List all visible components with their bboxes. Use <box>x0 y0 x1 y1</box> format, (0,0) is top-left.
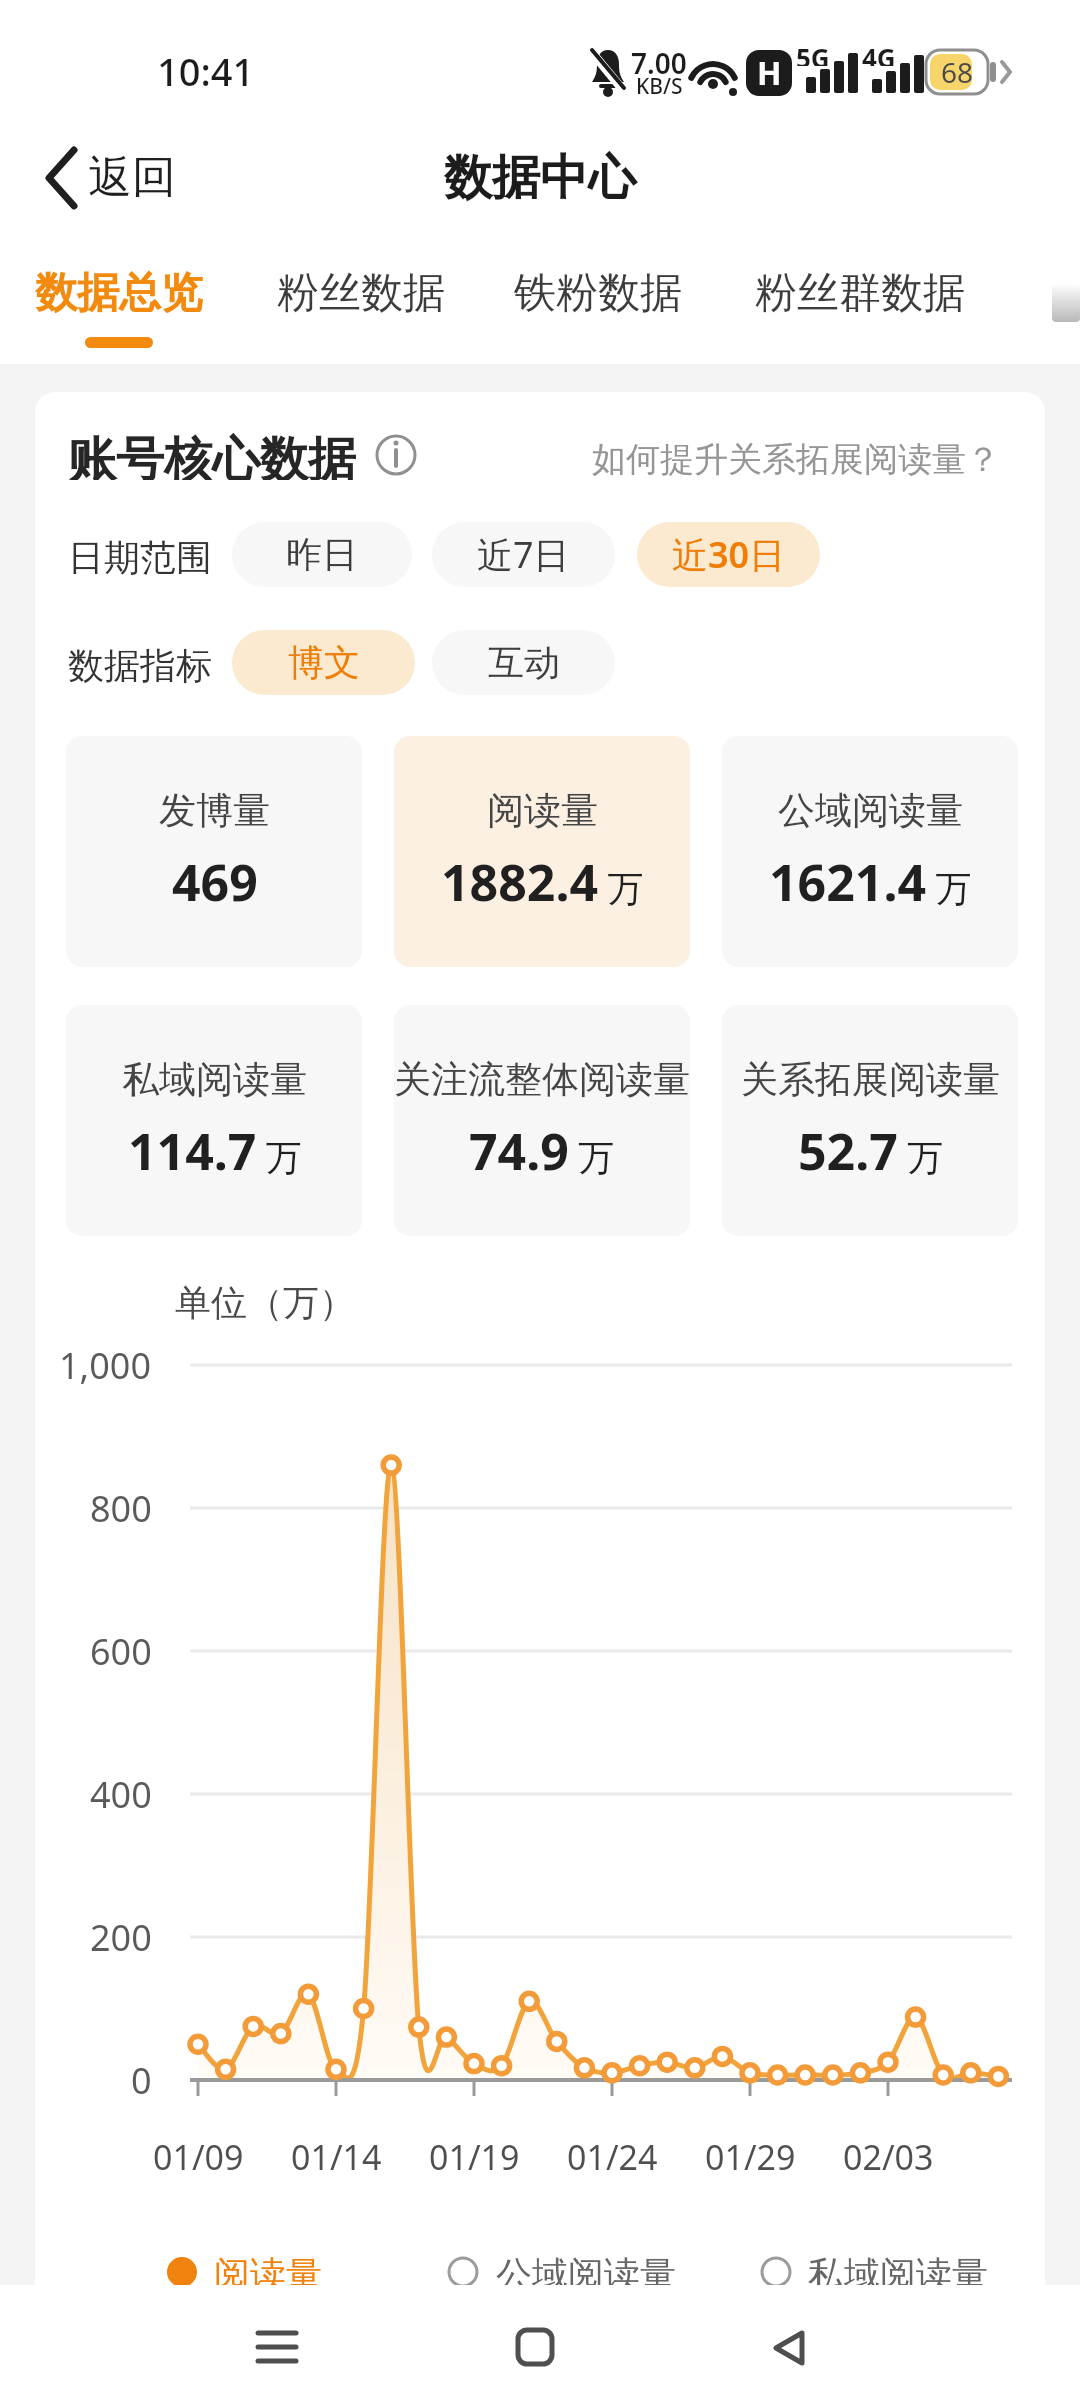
staticText: 1882.4 万 <box>441 848 644 916</box>
staticText: 01/29 <box>705 2134 796 2180</box>
staticText: 10:41 <box>157 45 255 95</box>
staticText: 私域阅读量 <box>808 2252 988 2292</box>
staticText: 粉丝数据 <box>277 267 445 320</box>
staticText: 数据指标 <box>68 643 212 685</box>
staticText: 数据总览 <box>35 267 203 320</box>
button[interactable]: 关系拓展阅读量 <box>722 1005 1018 1236</box>
button[interactable]: 阅读量 <box>394 736 690 967</box>
staticText: 74.9 万 <box>469 1117 615 1185</box>
button[interactable]: 关注流整体阅读量 <box>394 1005 690 1236</box>
staticText: 0 <box>131 2056 152 2104</box>
button[interactable]: 近7日 <box>432 522 615 587</box>
button[interactable]: 粉丝数据 <box>275 266 447 320</box>
staticText: 01/14 <box>291 2134 382 2180</box>
staticText: 粉丝群数据 <box>755 267 965 320</box>
staticText: 日期范围 <box>68 535 212 577</box>
staticText: 1,000 <box>59 1341 152 1389</box>
staticText: 01/19 <box>429 2134 520 2180</box>
staticText: 阅读量 <box>487 787 598 834</box>
staticText: 800 <box>90 1484 152 1532</box>
staticText: 01/24 <box>567 2134 658 2180</box>
button[interactable]: 近30日 <box>637 522 820 587</box>
staticText: 公域阅读量 <box>496 2252 676 2292</box>
button[interactable]: 公域阅读量 <box>722 736 1018 967</box>
staticText: 关系拓展阅读量 <box>741 1056 1000 1103</box>
button[interactable] <box>505 2317 565 2377</box>
button[interactable]: 昨日 <box>232 522 412 587</box>
staticText: 账号核心数据 <box>68 430 356 480</box>
staticText: 返回 <box>88 150 176 205</box>
button[interactable]: 私域阅读量 <box>66 1005 362 1236</box>
staticText: 200 <box>90 1913 152 1961</box>
staticText: 私域阅读量 <box>122 1056 307 1103</box>
staticText: 4G <box>862 40 896 66</box>
staticText: 近30日 <box>672 530 786 579</box>
staticText: 阅读量 <box>214 2252 322 2292</box>
staticText: 400 <box>90 1770 152 1818</box>
staticText: 52.7 万 <box>798 1117 944 1185</box>
staticText: 5G <box>796 40 830 66</box>
staticText: 7.00 <box>631 44 687 76</box>
staticText: 关注流整体阅读量 <box>394 1056 690 1103</box>
staticText: 600 <box>90 1627 152 1675</box>
button[interactable]: 粉丝群数据 <box>752 266 967 320</box>
staticText: 02/03 <box>843 2134 934 2180</box>
button[interactable]: 如何提升关系拓展阅读量？ <box>560 438 1000 480</box>
staticText: 昨日 <box>286 532 358 577</box>
staticText: 近7日 <box>477 530 570 579</box>
button[interactable]: 铁粉数据 <box>512 266 684 320</box>
staticText: 发博量 <box>159 787 270 834</box>
staticText: 公域阅读量 <box>778 787 963 834</box>
button[interactable] <box>247 2317 307 2377</box>
staticText: 铁粉数据 <box>514 267 682 320</box>
button[interactable]: 互动 <box>432 630 615 695</box>
staticText: 如何提升关系拓展阅读量？ <box>592 438 1000 480</box>
staticText: 数据中心 <box>444 148 636 208</box>
staticText: 469 <box>172 848 258 916</box>
staticText: 114.7 万 <box>128 1117 302 1185</box>
button[interactable]: 返回 <box>88 146 198 208</box>
button[interactable] <box>763 2317 823 2377</box>
button[interactable]: 博文 <box>232 630 415 695</box>
button[interactable]: 数据总览 <box>33 266 205 320</box>
staticText: 1621.4 万 <box>769 848 972 916</box>
button[interactable]: 发博量 <box>66 736 362 967</box>
staticText: KB/S <box>636 72 683 98</box>
staticText: 博文 <box>288 640 360 685</box>
staticText: 单位（万） <box>175 1280 355 1324</box>
staticText: 68 <box>941 53 974 91</box>
staticText: 互动 <box>488 640 560 685</box>
staticText: H <box>757 51 782 95</box>
staticText: 01/09 <box>153 2134 244 2180</box>
